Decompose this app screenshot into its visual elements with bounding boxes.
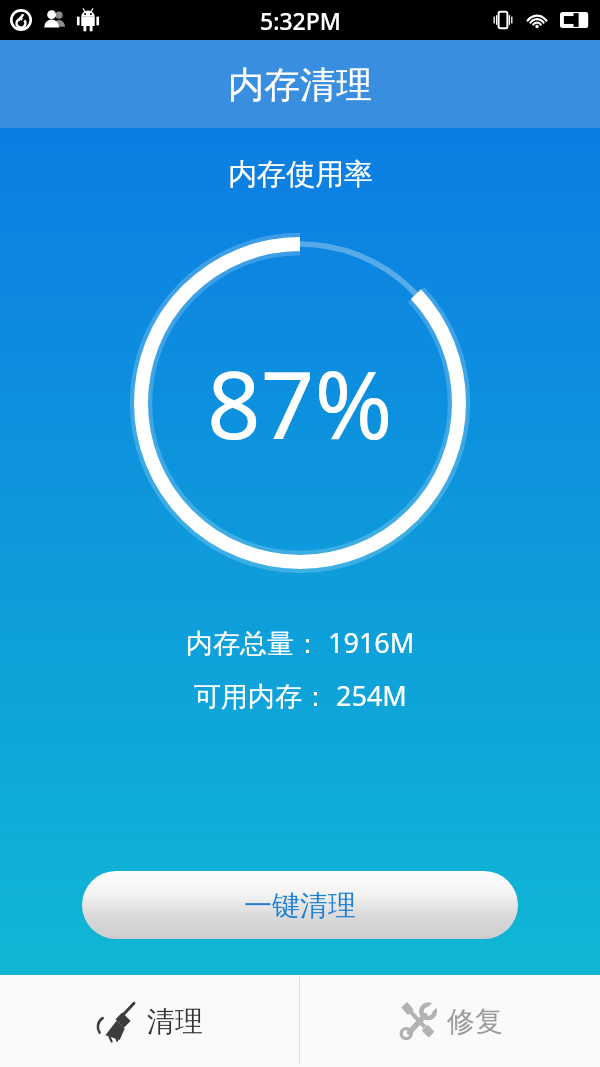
- other: 修复: [397, 1000, 439, 1042]
- staticText: 修复: [447, 1004, 503, 1039]
- staticText: 可用内存： 254M: [194, 677, 407, 714]
- staticText: 一键清理: [244, 888, 356, 923]
- staticText: 清理: [147, 1004, 203, 1039]
- other: 清理: [97, 1000, 139, 1042]
- staticText: 87%: [207, 339, 393, 467]
- staticText: 5:32PM: [260, 5, 341, 36]
- button[interactable]: 修复: [300, 975, 600, 1067]
- button[interactable]: 清理: [0, 975, 299, 1067]
- staticText: 内存使用率: [228, 156, 373, 193]
- staticText: 内存总量： 1916M: [186, 624, 415, 661]
- button[interactable]: 一键清理: [82, 871, 518, 939]
- staticText: 内存清理: [228, 62, 372, 107]
